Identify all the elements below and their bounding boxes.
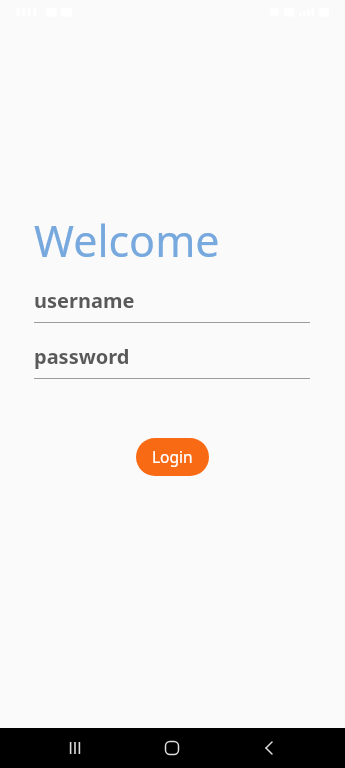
button[interactable]: Home	[123, 728, 221, 768]
button[interactable]: password	[34, 337, 310, 379]
button[interactable]: Back	[221, 728, 319, 768]
staticText: username	[34, 287, 135, 314]
button[interactable]: Recent apps	[26, 728, 123, 768]
button[interactable]: username	[34, 281, 310, 323]
staticText: Welcome	[34, 211, 220, 270]
staticText: Login	[152, 446, 193, 467]
button[interactable]: Login	[136, 438, 209, 476]
staticText: password	[34, 343, 130, 370]
